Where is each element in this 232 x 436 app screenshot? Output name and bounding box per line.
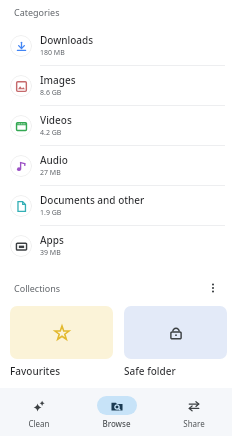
staticText: Safe folder [124,364,176,378]
staticText: Favourites [10,364,61,378]
staticText: 180 MB [40,48,65,58]
button[interactable]: Browse [78,388,155,436]
staticText: Apps [40,233,64,247]
button[interactable]: Safe folder [124,306,227,378]
button[interactable]: Documents and other [0,186,232,225]
staticText: Documents and other [40,193,145,207]
staticText: Clean [28,418,50,429]
button[interactable]: Share [155,388,232,436]
staticText: Downloads [40,33,94,47]
staticText: Images [40,73,76,87]
button[interactable]: Videos [0,106,232,145]
staticText: Categories [14,6,60,18]
staticText: 4.2 GB [40,128,62,138]
staticText: Share [183,418,205,429]
button[interactable]: Images [0,66,232,105]
button[interactable]: More options [202,277,224,299]
button[interactable]: Favourites [10,306,113,378]
staticText: Browse [102,418,131,429]
button[interactable]: Apps [0,226,232,265]
staticText: Audio [40,153,68,167]
staticText: 8.6 GB [40,88,62,98]
staticText: 1.9 GB [40,208,62,218]
staticText: 39 MB [40,248,61,258]
button[interactable]: Clean [0,388,78,436]
staticText: Collections [14,282,61,294]
button[interactable]: Audio [0,146,232,185]
staticText: 27 MB [40,168,61,178]
staticText: Videos [40,113,72,127]
button[interactable]: Downloads [0,26,232,65]
